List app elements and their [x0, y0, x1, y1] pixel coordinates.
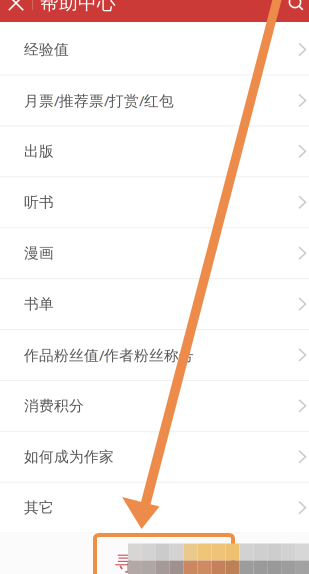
button[interactable]: 消费积分 [0, 381, 309, 432]
button[interactable]: 如何成为作家 [0, 432, 309, 483]
button[interactable]: 经验值 [0, 25, 309, 75]
button[interactable]: 出版 [0, 126, 309, 177]
staticText: 经验值 [24, 40, 69, 58]
button[interactable]: Search [284, 0, 308, 14]
button[interactable]: 其它 [0, 483, 309, 534]
staticText: 其它 [24, 499, 54, 517]
button[interactable]: 月票/推荐票/打赏/红包 [0, 75, 309, 126]
button[interactable]: 漫画 [0, 228, 309, 279]
staticText: 听书 [24, 193, 54, 211]
button[interactable]: 书单 [0, 279, 309, 330]
staticText: 消费积分 [24, 397, 84, 415]
staticText: 如何成为作家 [24, 448, 114, 466]
staticText: 作品粉丝值/作者粉丝称号 [24, 345, 194, 365]
button[interactable]: 作品粉丝值/作者粉丝称号 [0, 330, 309, 381]
staticText: 书单 [24, 295, 54, 313]
staticText: 出版 [24, 142, 54, 160]
staticText: 帮助中心 [40, 0, 116, 14]
staticText: 月票/推荐票/打赏/红包 [24, 91, 174, 110]
button[interactable]: Close [0, 0, 32, 14]
staticText: 寻 [115, 551, 135, 574]
staticText: 漫画 [24, 244, 54, 262]
button[interactable]: 听书 [0, 177, 309, 228]
